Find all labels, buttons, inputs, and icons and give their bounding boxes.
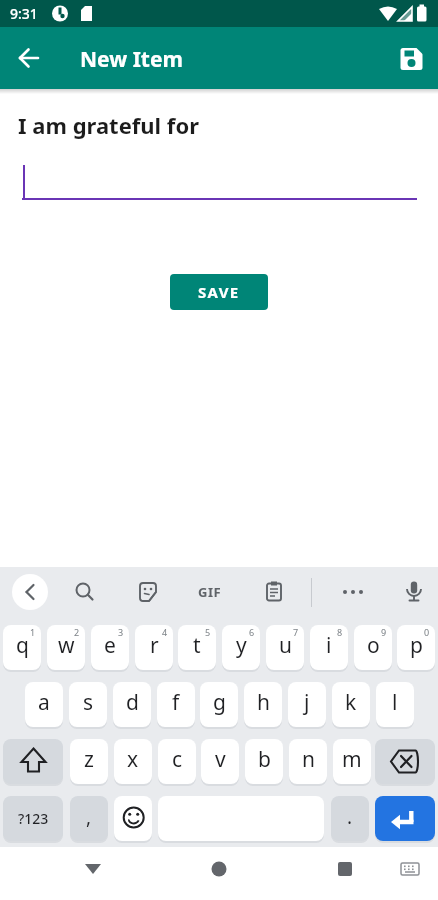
button[interactable]: [130, 574, 166, 610]
staticText: 9: [381, 626, 387, 638]
button[interactable]: .: [331, 796, 369, 841]
button[interactable]: u: [266, 625, 304, 670]
button[interactable]: [114, 796, 152, 841]
staticText: x: [127, 745, 139, 774]
button[interactable]: [389, 36, 434, 81]
button[interactable]: [323, 847, 367, 900]
button[interactable]: h: [244, 682, 282, 727]
staticText: y: [236, 631, 247, 660]
button[interactable]: z: [70, 739, 108, 784]
staticText: h: [257, 688, 270, 717]
button[interactable]: v: [201, 739, 239, 784]
staticText: f: [172, 688, 180, 717]
staticText: o: [367, 631, 380, 660]
staticText: v: [215, 745, 226, 774]
staticText: ?123: [18, 809, 49, 828]
button[interactable]: w: [47, 625, 85, 670]
staticText: a: [38, 688, 50, 717]
staticText: e: [104, 631, 116, 660]
button[interactable]: n: [289, 739, 327, 784]
staticText: l: [392, 688, 398, 717]
button[interactable]: q: [3, 625, 41, 670]
button[interactable]: a: [25, 682, 63, 727]
button[interactable]: [12, 574, 48, 610]
staticText: j: [304, 688, 310, 717]
button[interactable]: s: [69, 682, 107, 727]
button[interactable]: k: [332, 682, 370, 727]
staticText: b: [258, 745, 271, 774]
staticText: GIF: [198, 583, 222, 601]
button[interactable]: [375, 796, 435, 841]
staticText: ,: [86, 804, 92, 830]
button[interactable]: f: [157, 682, 195, 727]
button[interactable]: t: [178, 625, 216, 670]
button[interactable]: g: [200, 682, 238, 727]
staticText: n: [302, 745, 315, 774]
button[interactable]: [67, 574, 103, 610]
button[interactable]: [396, 574, 432, 610]
button[interactable]: ?123: [3, 796, 63, 841]
button[interactable]: l: [376, 682, 414, 727]
button[interactable]: i: [310, 625, 348, 670]
staticText: t: [193, 631, 201, 660]
staticText: r: [150, 631, 159, 660]
button[interactable]: [71, 847, 115, 900]
button[interactable]: x: [114, 739, 152, 784]
button[interactable]: [256, 574, 292, 610]
button[interactable]: [335, 574, 371, 610]
staticText: SAVE: [198, 282, 240, 302]
staticText: 0: [424, 626, 430, 638]
staticText: I am grateful for: [18, 110, 199, 140]
button[interactable]: r: [135, 625, 173, 670]
staticText: z: [84, 745, 94, 774]
staticText: 7: [293, 626, 299, 638]
staticText: g: [213, 688, 226, 717]
staticText: 1: [30, 626, 36, 638]
staticText: 8: [337, 626, 343, 638]
staticText: 3: [118, 626, 124, 638]
staticText: m: [342, 745, 362, 774]
button[interactable]: o: [354, 625, 392, 670]
button[interactable]: b: [245, 739, 283, 784]
button[interactable]: j: [288, 682, 326, 727]
staticText: w: [58, 631, 75, 660]
staticText: New Item: [80, 45, 183, 74]
staticText: 9:31: [10, 4, 38, 23]
staticText: .: [347, 804, 353, 830]
staticText: u: [279, 631, 292, 660]
button[interactable]: GIF: [192, 574, 228, 610]
button[interactable]: e: [91, 625, 129, 670]
staticText: 4: [162, 626, 168, 638]
button[interactable]: SAVE: [170, 274, 268, 310]
staticText: 5: [205, 626, 211, 638]
staticText: d: [126, 688, 139, 717]
button[interactable]: [375, 739, 435, 784]
staticText: q: [16, 631, 29, 660]
button[interactable]: [6, 35, 52, 81]
staticText: 2: [74, 626, 80, 638]
button[interactable]: p: [397, 625, 435, 670]
button[interactable]: d: [113, 682, 151, 727]
staticText: i: [326, 631, 332, 660]
button[interactable]: [3, 739, 63, 784]
button[interactable]: ,: [70, 796, 108, 841]
staticText: k: [345, 688, 357, 717]
button[interactable]: y: [222, 625, 260, 670]
staticText: 6: [249, 626, 255, 638]
staticText: p: [410, 631, 423, 660]
button[interactable]: m: [333, 739, 371, 784]
button[interactable]: [197, 847, 241, 900]
staticText: s: [83, 688, 94, 717]
staticText: c: [172, 745, 183, 774]
button[interactable]: [392, 847, 428, 900]
button[interactable]: c: [158, 739, 196, 784]
